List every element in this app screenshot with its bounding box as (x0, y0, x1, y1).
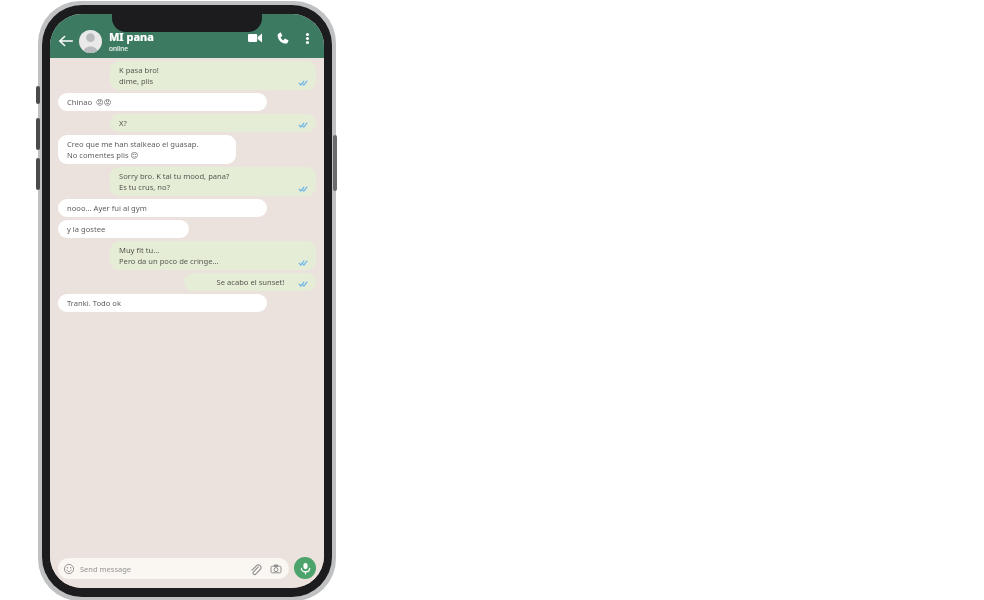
button[interactable]: Send message (58, 558, 289, 579)
button[interactable]: Voice call (272, 27, 294, 49)
staticText: nooo... Ayer fui al gym (67, 203, 259, 213)
staticText: Es tu crus, no? (119, 182, 308, 192)
button[interactable]: Record voice message (294, 557, 316, 579)
staticText: Se acabo el sunset! (193, 277, 308, 287)
button[interactable]: X? (110, 114, 316, 132)
button[interactable]: Sorry bro. K tal tu mood, pana? (110, 167, 316, 196)
staticText: Pero da un poco de cringe... (119, 256, 308, 266)
staticText: No comentes plis 😌 (67, 150, 228, 160)
button[interactable]: Back (56, 31, 76, 51)
button[interactable]: Chinao 😡😡 (58, 93, 267, 111)
button[interactable]: Contact photo (79, 30, 102, 53)
staticText: Muy fit tu... (119, 245, 308, 255)
staticText: Sorry bro. K tal tu mood, pana? (119, 171, 308, 181)
button[interactable]: More options (298, 29, 316, 47)
button[interactable]: nooo... Ayer fui al gym (58, 199, 267, 217)
button[interactable]: Muy fit tu... (110, 241, 316, 270)
button[interactable]: MI pana (109, 29, 154, 53)
staticText: online (109, 44, 128, 53)
staticText: Tranki. Todo ok (67, 298, 259, 308)
button[interactable]: Se acabo el sunset! (184, 273, 316, 291)
button[interactable]: Tranki. Todo ok (58, 294, 267, 312)
button[interactable]: Creo que me han stalkeao el guasap. (58, 135, 236, 164)
staticText: y la gostee (67, 224, 181, 234)
staticText: K pasa bro! (119, 65, 308, 75)
staticText: Creo que me han stalkeao el guasap. (67, 139, 228, 149)
button[interactable]: Attach (248, 562, 262, 576)
staticText: Chinao 😡😡 (67, 97, 259, 107)
button[interactable]: Camera (269, 562, 283, 576)
button[interactable]: Video call (244, 27, 266, 49)
staticText: X? (119, 118, 308, 128)
staticText: Send message (80, 564, 132, 574)
staticText: MI pana (109, 29, 154, 44)
button[interactable]: K pasa bro! (110, 61, 316, 90)
staticText: dime, plis (119, 76, 308, 86)
button[interactable]: y la gostee (58, 220, 189, 238)
